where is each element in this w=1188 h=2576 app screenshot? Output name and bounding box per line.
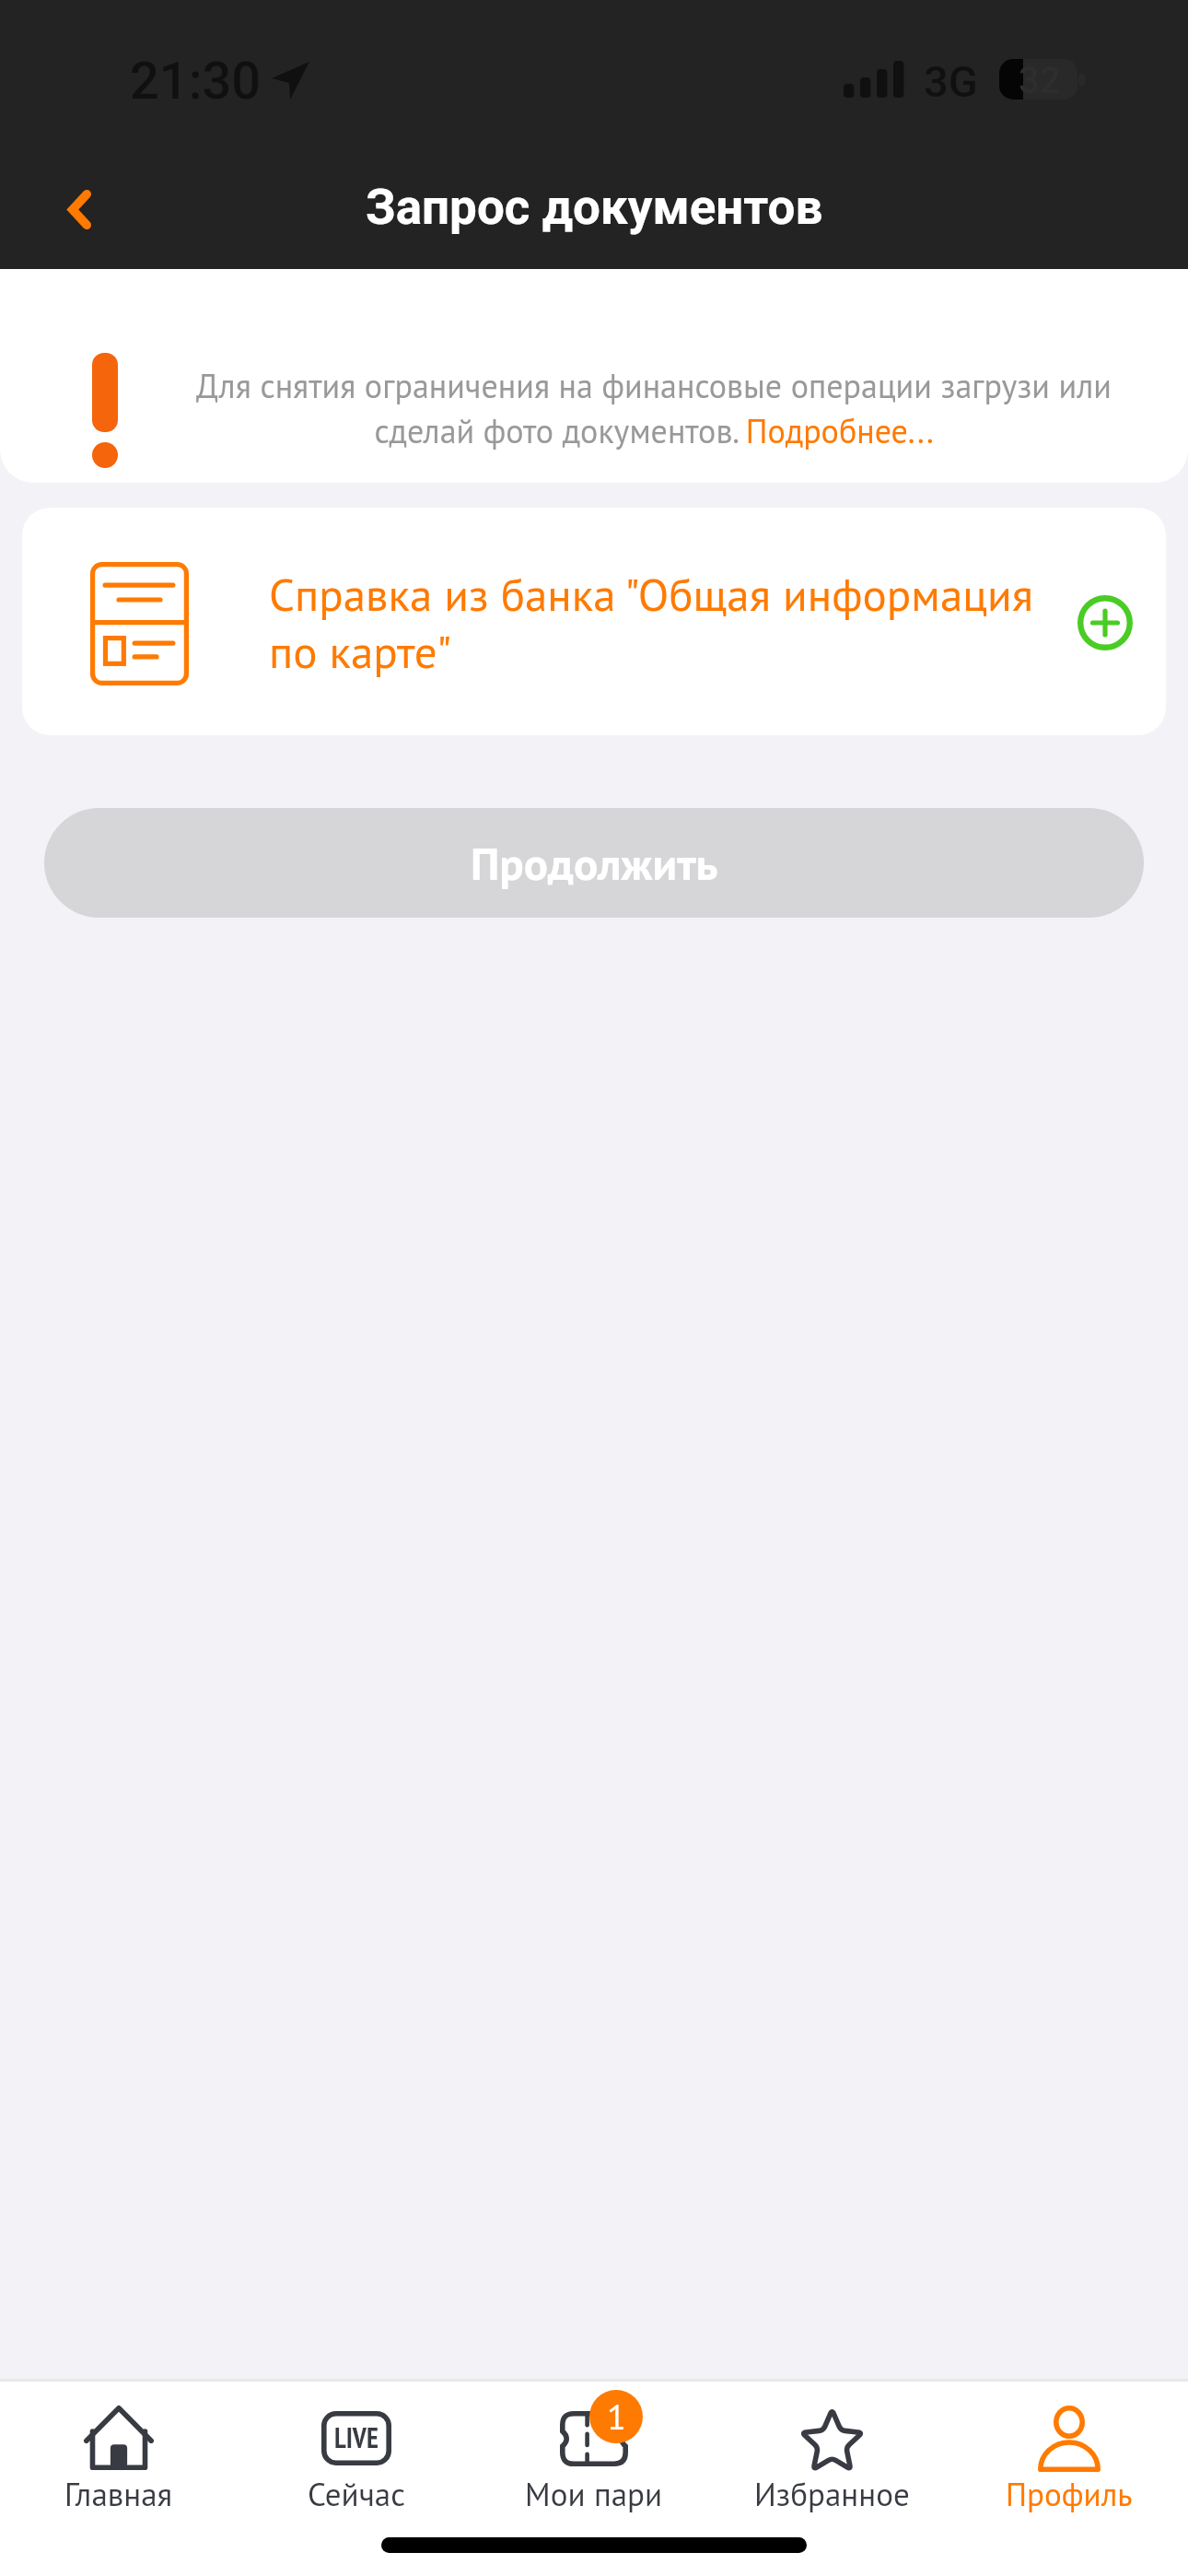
staticText: 32 bbox=[1019, 59, 1061, 100]
staticText: Справка из банка "Общая информация по ка… bbox=[269, 565, 1061, 680]
staticText: 21:30 bbox=[130, 51, 262, 111]
button[interactable]: Справка из банка "Общая информация по ка… bbox=[22, 508, 1166, 735]
button[interactable]: Для снятия ограничения на финансовые опе… bbox=[184, 364, 1124, 452]
button[interactable]: 1 bbox=[475, 2382, 713, 2514]
staticText: Избранное bbox=[754, 2473, 910, 2514]
button[interactable]: Продолжить bbox=[44, 808, 1144, 918]
button[interactable]: Профиль bbox=[950, 2382, 1188, 2514]
button[interactable]: Избранное bbox=[713, 2382, 950, 2514]
staticText: LIVE bbox=[334, 2419, 379, 2455]
button[interactable]: LIVE bbox=[238, 2382, 475, 2514]
staticText: Запрос документов bbox=[366, 179, 823, 236]
staticText: Профиль bbox=[1006, 2473, 1133, 2514]
staticText: Мои пари bbox=[525, 2473, 663, 2514]
button[interactable]: Главная bbox=[0, 2382, 238, 2514]
staticText: Сейчас bbox=[308, 2473, 405, 2514]
button[interactable]: Add document bbox=[1055, 573, 1155, 673]
staticText: 3G bbox=[924, 56, 978, 107]
button[interactable]: Back bbox=[0, 147, 120, 267]
staticText: Продолжить bbox=[471, 834, 718, 892]
staticText: 1 bbox=[607, 2394, 626, 2439]
staticText: Главная bbox=[64, 2473, 173, 2514]
